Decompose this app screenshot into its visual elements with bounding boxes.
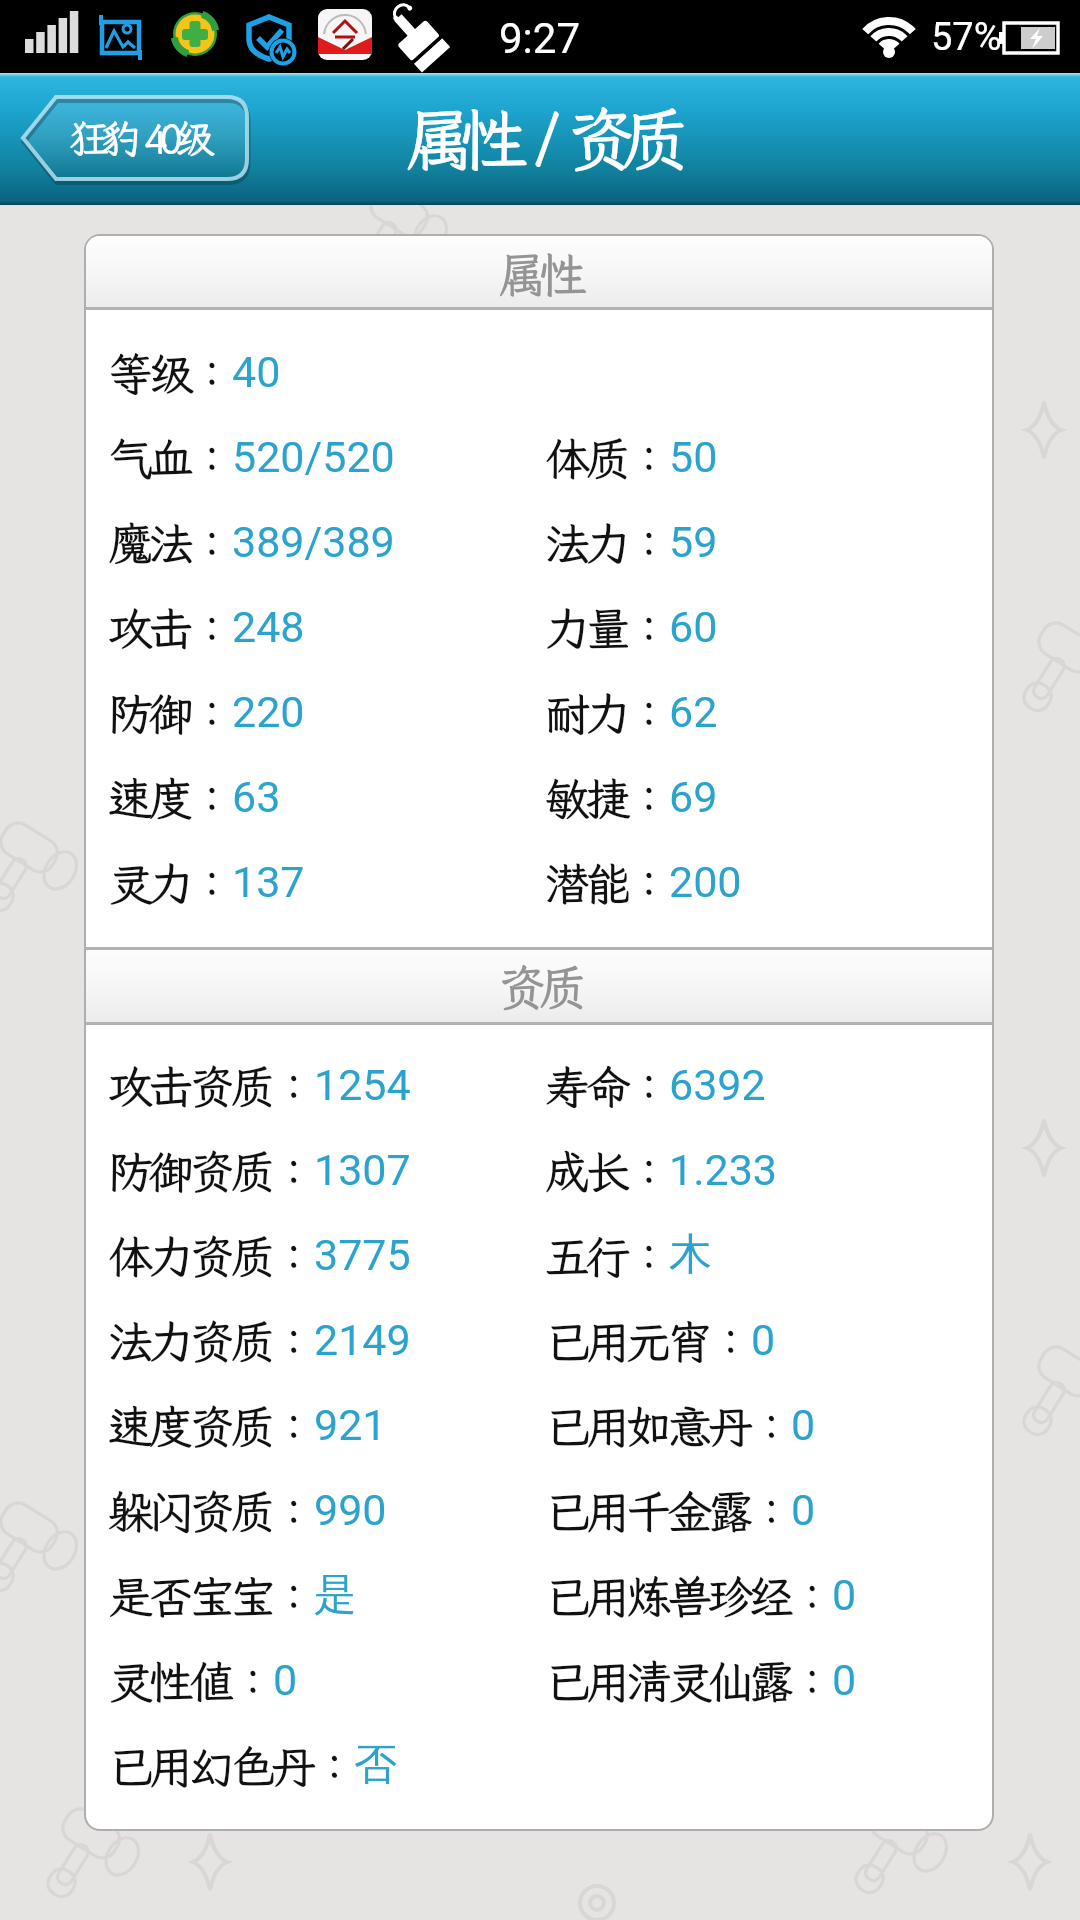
- staticText: 攻击资质：: [108, 1057, 313, 1116]
- staticText: 220: [232, 687, 305, 737]
- staticText: 攻击：: [108, 599, 231, 658]
- staticText: 0: [273, 1655, 298, 1705]
- staticText: 等级：: [108, 344, 231, 403]
- staticText: 520/520: [232, 432, 395, 482]
- staticText: 寿命：: [545, 1057, 668, 1116]
- staticText: 法力资质：: [108, 1312, 313, 1371]
- staticText: 体力资质：: [108, 1227, 313, 1286]
- staticText: 50: [669, 432, 718, 482]
- staticText: 已用元宵：: [545, 1312, 750, 1371]
- staticText: 防御资质：: [108, 1142, 313, 1201]
- staticText: 已用如意丹：: [545, 1397, 790, 1456]
- staticText: 137: [232, 857, 305, 907]
- staticText: 已用千金露：: [545, 1482, 790, 1541]
- staticText: 否: [354, 1738, 397, 1792]
- staticText: 1254: [314, 1060, 411, 1110]
- staticText: 灵性值：: [108, 1652, 272, 1711]
- staticText: 3775: [314, 1230, 411, 1280]
- staticText: 40: [232, 347, 281, 397]
- staticText: 资质: [498, 955, 581, 1018]
- staticText: 0: [832, 1570, 857, 1620]
- staticText: 属性: [498, 242, 581, 305]
- staticText: 9:27: [499, 14, 580, 63]
- staticText: 已用清灵仙露：: [545, 1652, 831, 1711]
- staticText: 速度资质：: [108, 1397, 313, 1456]
- staticText: 属性 / 资质: [405, 94, 677, 184]
- staticText: 魔法：: [108, 514, 231, 573]
- staticText: 57%: [931, 15, 1002, 60]
- staticText: 躲闪资质：: [108, 1482, 313, 1541]
- staticText: 潜能：: [545, 854, 668, 913]
- staticText: 速度：: [108, 769, 231, 828]
- staticText: 木: [669, 1228, 712, 1282]
- staticText: 69: [669, 772, 718, 822]
- staticText: 体质：: [545, 429, 668, 488]
- staticText: 耐力：: [545, 684, 668, 743]
- staticText: 0: [791, 1400, 816, 1450]
- staticText: 防御：: [108, 684, 231, 743]
- staticText: 灵力：: [108, 854, 231, 913]
- staticText: 200: [669, 857, 742, 907]
- staticText: 成长：: [545, 1142, 668, 1201]
- staticText: 0: [832, 1655, 857, 1705]
- button[interactable]: 返回 狂豹 40级: [20, 94, 250, 182]
- staticText: 1307: [314, 1145, 411, 1195]
- staticText: 2149: [314, 1315, 411, 1365]
- staticText: 6392: [669, 1060, 766, 1110]
- staticText: 1.233: [669, 1145, 778, 1195]
- staticText: 狂豹 40级: [69, 112, 207, 165]
- staticText: 990: [314, 1485, 387, 1535]
- staticText: 248: [232, 602, 305, 652]
- staticText: 0: [791, 1485, 816, 1535]
- staticText: 已用炼兽珍经：: [545, 1567, 831, 1626]
- staticText: 气血：: [108, 429, 231, 488]
- staticText: 力量：: [545, 599, 668, 658]
- staticText: 63: [232, 772, 281, 822]
- staticText: 法力：: [545, 514, 668, 573]
- staticText: 是否宝宝：: [108, 1567, 313, 1626]
- staticText: 59: [669, 517, 718, 567]
- staticText: 60: [669, 602, 718, 652]
- staticText: 是: [314, 1568, 357, 1622]
- staticText: 已用幻色丹：: [108, 1737, 353, 1796]
- staticText: 921: [314, 1400, 387, 1450]
- staticText: 敏捷：: [545, 769, 668, 828]
- staticText: 62: [669, 687, 718, 737]
- staticText: 五行：: [545, 1227, 668, 1286]
- staticText: 389/389: [232, 517, 395, 567]
- staticText: 0: [751, 1315, 776, 1365]
